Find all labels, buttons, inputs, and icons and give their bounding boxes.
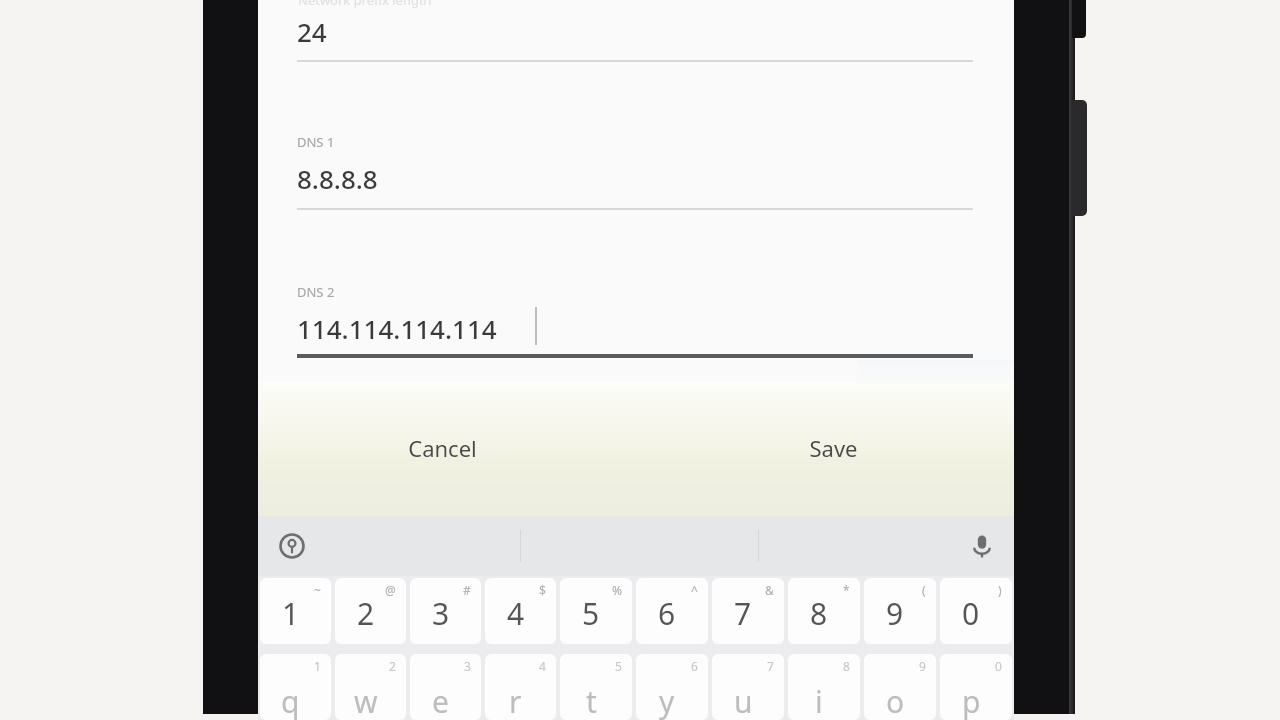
button[interactable]: 8 (788, 578, 860, 644)
staticText: ^ (691, 582, 698, 598)
staticText: 3 (464, 658, 471, 674)
staticText: i (815, 681, 823, 720)
button[interactable]: Voice input (958, 522, 1006, 570)
button[interactable]: y (636, 654, 708, 720)
staticText: 5 (582, 593, 600, 634)
button[interactable]: 5 (560, 578, 632, 644)
button[interactable]: Cancel (258, 382, 636, 516)
staticText: 6 (658, 593, 676, 634)
staticText: % (612, 582, 622, 598)
button[interactable]: 3 (410, 578, 481, 644)
button[interactable]: 1 (260, 578, 331, 644)
staticText: o (886, 681, 905, 720)
button[interactable]: e (410, 654, 481, 720)
button[interactable]: 2 (335, 578, 406, 644)
button[interactable]: w (335, 654, 406, 720)
staticText: 6 (691, 658, 698, 674)
staticText: 8 (843, 658, 850, 674)
button[interactable]: p (940, 654, 1012, 720)
staticText: e (432, 681, 449, 720)
staticText: 8 (810, 593, 828, 634)
staticText: 5 (615, 658, 622, 674)
other: Volume buttons (1072, 100, 1087, 216)
staticText: ) (998, 582, 1002, 598)
button[interactable]: 9 (864, 578, 936, 644)
button[interactable]: t (560, 654, 632, 720)
staticText: p (962, 681, 981, 720)
button[interactable]: Save (636, 382, 1014, 516)
staticText: 4 (539, 658, 546, 674)
staticText: 9 (919, 658, 926, 674)
staticText: ( (922, 582, 926, 598)
staticText: 9 (886, 593, 904, 634)
staticText: 7 (734, 593, 752, 634)
button[interactable]: q (260, 654, 331, 720)
staticText: @ (385, 582, 396, 598)
staticText: DNS 1 (297, 133, 335, 151)
staticText: 2 (389, 658, 396, 674)
staticText: # (463, 582, 471, 598)
staticText: 2 (357, 593, 375, 634)
staticText: Save (809, 433, 858, 463)
staticText: Network prefix length (298, 0, 432, 9)
button[interactable]: 6 (636, 578, 708, 644)
button[interactable]: 7 (712, 578, 784, 644)
button[interactable] (278, 110, 998, 222)
other: Power button (1072, 0, 1086, 38)
button[interactable] (278, 258, 998, 370)
staticText: ~ (314, 582, 321, 598)
button[interactable]: 4 (485, 578, 556, 644)
staticText: t (586, 681, 597, 720)
staticText: 24 (297, 14, 327, 49)
staticText: 0 (995, 658, 1002, 674)
button[interactable]: o (864, 654, 936, 720)
staticText: w (354, 681, 378, 720)
button[interactable]: 0 (940, 578, 1012, 644)
staticText: Cancel (408, 433, 477, 463)
staticText: 8.8.8.8 (297, 161, 378, 196)
staticText: u (734, 681, 753, 720)
staticText: r (509, 681, 522, 720)
button[interactable]: u (712, 654, 784, 720)
staticText: DNS 2 (297, 283, 335, 301)
button[interactable]: Keyboard theme (268, 522, 316, 570)
staticText: * (843, 582, 850, 598)
staticText: 3 (432, 593, 450, 634)
staticText: 7 (767, 658, 774, 674)
staticText: 4 (507, 593, 525, 634)
staticText: 1 (282, 593, 300, 634)
staticText: $ (539, 582, 546, 598)
staticText: q (281, 681, 300, 720)
staticText: 114.114.114.114 (297, 311, 497, 346)
staticText: 0 (962, 593, 980, 634)
button[interactable]: r (485, 654, 556, 720)
button[interactable]: i (788, 654, 860, 720)
staticText: 1 (314, 658, 321, 674)
staticText: y (659, 681, 675, 720)
staticText: & (765, 582, 774, 598)
